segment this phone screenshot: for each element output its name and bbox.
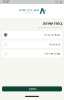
staticText: המשך xyxy=(28,87,36,90)
staticText: אבן דרך בנייה xyxy=(18,9,38,12)
button[interactable]: המשך xyxy=(0,86,64,91)
staticText: בחרו את סוג השירות שתרצו להזמין מאיתנו ה… xyxy=(37,26,61,28)
staticText: 9:41 xyxy=(3,0,10,4)
staticText: ||| ▮ xyxy=(55,0,61,4)
staticText: שיפוצים xyxy=(49,43,60,46)
button[interactable]: שיפוצים xyxy=(2,40,62,48)
staticText: בחרו שירות xyxy=(42,21,61,25)
staticText: עבודות בנייה xyxy=(43,33,60,36)
button[interactable]: תכנון אדריכלי xyxy=(2,50,62,57)
staticText: תכנון אדריכלי xyxy=(43,52,60,55)
staticText: פתרונות מתקדמים xyxy=(23,12,34,13)
button[interactable]: עבודות בנייה xyxy=(2,31,62,39)
